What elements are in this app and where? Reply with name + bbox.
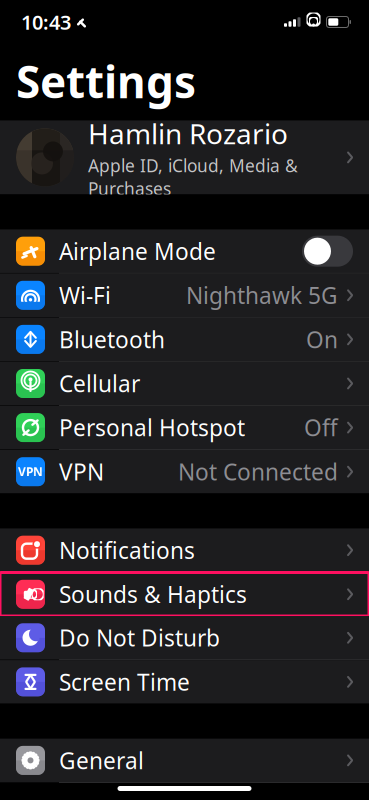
staticText: Notifications <box>59 535 195 565</box>
staticText: General <box>59 745 144 775</box>
button[interactable]: Airplane Mode <box>0 229 369 273</box>
button[interactable]: Bluetooth <box>0 318 369 362</box>
button[interactable]: Notifications <box>0 528 369 572</box>
staticText: Settings <box>16 52 196 110</box>
staticText: Airplane Mode <box>59 236 216 266</box>
button[interactable]: Wi-Fi <box>0 273 369 318</box>
staticText: Apple ID, iCloud, Media & Purchases <box>88 154 298 200</box>
staticText: VPN <box>59 457 104 487</box>
button[interactable]: Sounds & Haptics <box>0 572 369 616</box>
staticText: Nighthawk 5G <box>186 280 338 310</box>
button[interactable]: VPN <box>0 450 369 493</box>
staticText: 10:43 <box>21 9 71 35</box>
button[interactable]: General <box>0 739 369 783</box>
button[interactable]: Hamlin Rozario <box>0 120 369 194</box>
staticText: Cellular <box>59 368 140 398</box>
staticText: VPN <box>18 464 43 480</box>
staticText: Sounds & Haptics <box>59 579 247 609</box>
staticText: Hamlin Rozario <box>88 115 288 152</box>
button[interactable]: Do Not Disturb <box>0 616 369 660</box>
staticText: Do Not Disturb <box>59 623 220 653</box>
button[interactable]: Screen Time <box>0 660 369 704</box>
staticText: Personal Hotspot <box>59 412 245 443</box>
staticText: Off <box>304 412 338 443</box>
staticText: Not Connected <box>178 457 338 487</box>
staticText: Screen Time <box>59 667 190 697</box>
button[interactable]: Cellular <box>0 362 369 406</box>
staticText: On <box>306 324 338 354</box>
button[interactable]: Personal Hotspot <box>0 406 369 450</box>
staticText: Bluetooth <box>59 324 165 354</box>
staticText: Wi-Fi <box>59 280 111 310</box>
